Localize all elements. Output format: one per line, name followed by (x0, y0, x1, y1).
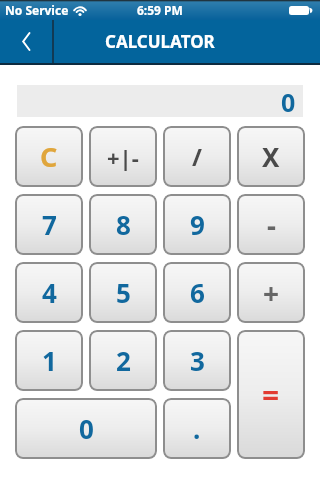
staticText: 9 (190, 207, 205, 242)
button[interactable]: C (15, 126, 83, 187)
button[interactable]: 0 (15, 398, 157, 459)
staticText: 2 (116, 343, 131, 378)
button[interactable]: 1 (15, 330, 83, 391)
button[interactable]: = (237, 330, 305, 459)
button[interactable]: 8 (89, 194, 157, 255)
button[interactable]: - (237, 194, 305, 255)
staticText: 5 (116, 275, 131, 310)
staticText: 4 (42, 275, 57, 310)
button[interactable]: +|- (89, 126, 157, 187)
button[interactable]: 2 (89, 330, 157, 391)
staticText: No Service (5, 2, 69, 18)
button[interactable]: 3 (163, 330, 231, 391)
staticText: 6:59 PM (137, 2, 183, 18)
button[interactable]: X (237, 126, 305, 187)
staticText: +|- (107, 142, 139, 172)
button[interactable]: 6 (163, 262, 231, 323)
staticText: X (262, 139, 280, 174)
staticText: 0 (281, 85, 296, 117)
staticText: - (267, 206, 276, 244)
staticText: / (192, 140, 202, 173)
button[interactable]: 9 (163, 194, 231, 255)
staticText: 0 (79, 411, 94, 446)
staticText: 8 (116, 207, 131, 242)
staticText: = (262, 374, 280, 415)
button[interactable]: 7 (15, 194, 83, 255)
button[interactable]: 4 (15, 262, 83, 323)
button[interactable]: + (237, 262, 305, 323)
staticText: C (40, 138, 58, 175)
staticText: . (193, 411, 201, 446)
staticText: 6 (190, 275, 205, 310)
staticText: + (263, 274, 280, 312)
button[interactable]: / (163, 126, 231, 187)
button[interactable]: . (163, 398, 231, 459)
staticText: 7 (42, 207, 57, 242)
staticText: 1 (42, 343, 57, 378)
staticText: CALCULATOR (105, 30, 215, 53)
button[interactable]: 5 (89, 262, 157, 323)
button[interactable] (0, 20, 52, 63)
staticText: 3 (190, 343, 205, 378)
